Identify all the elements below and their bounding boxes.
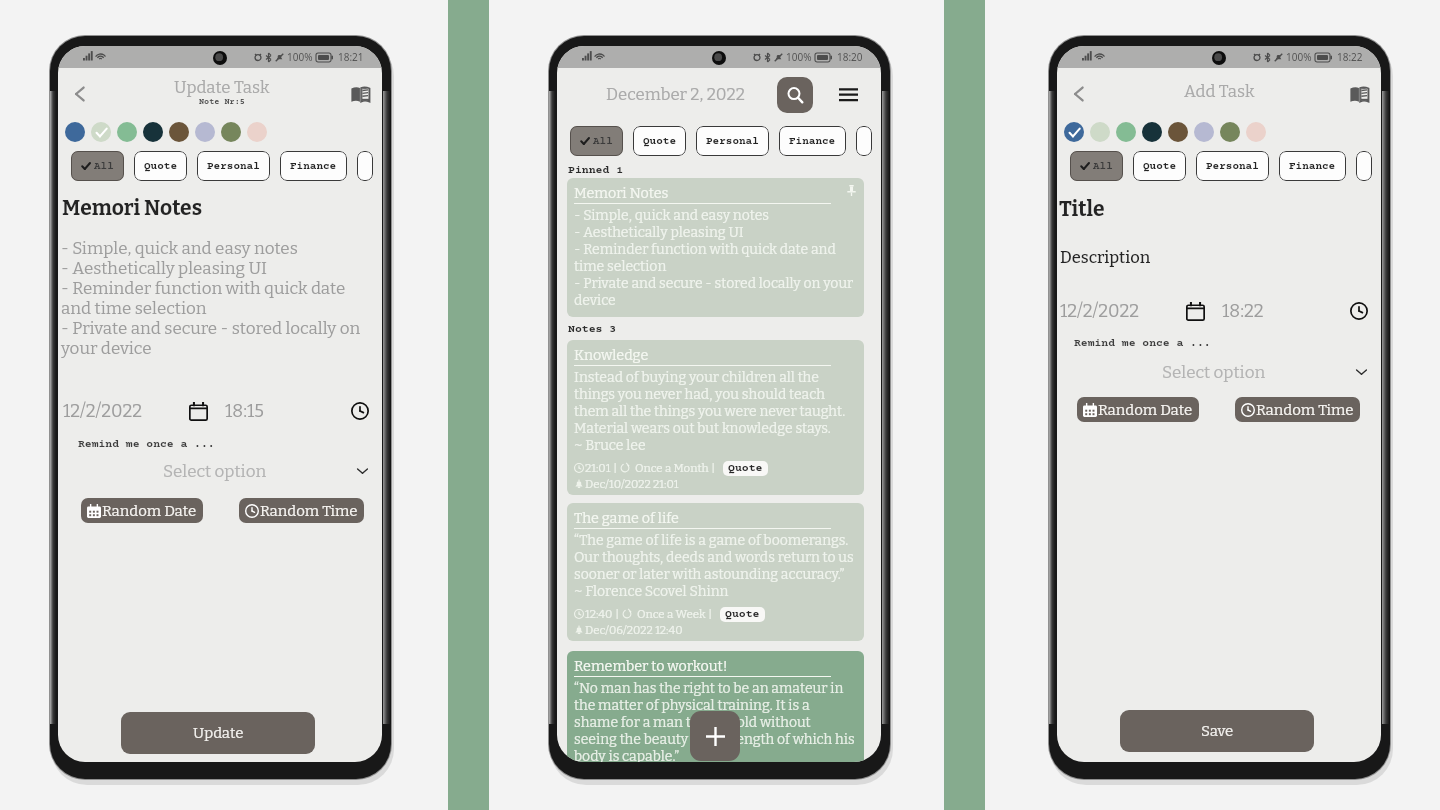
button[interactable]: Finance bbox=[779, 126, 846, 156]
staticText: 12/2/2022 bbox=[63, 400, 143, 422]
staticText: Personal bbox=[207, 160, 260, 172]
button[interactable]: More filters bbox=[856, 126, 872, 156]
button[interactable]: Colour 7 bbox=[1246, 122, 1266, 142]
staticText: Quote bbox=[728, 462, 763, 475]
staticText: Dec/06/2022 12:40 bbox=[585, 623, 683, 637]
button[interactable]: All bbox=[570, 126, 623, 156]
button[interactable]: Random Time bbox=[239, 498, 364, 523]
button[interactable]: Colour 5 bbox=[195, 122, 215, 142]
button[interactable]: Menu bbox=[839, 88, 858, 102]
staticText: Random Date bbox=[102, 502, 197, 520]
staticText: Personal bbox=[1206, 160, 1259, 172]
staticText: “No man has the right to be an amateur i… bbox=[574, 680, 855, 762]
button[interactable]: Back bbox=[1070, 85, 1088, 103]
staticText: 100% bbox=[786, 50, 812, 64]
staticText: 18:22 bbox=[1222, 300, 1264, 322]
staticText: Personal bbox=[706, 135, 759, 147]
button[interactable]: Memori Notes bbox=[567, 178, 864, 317]
staticText: Once a Week bbox=[637, 607, 706, 621]
button[interactable]: Personal bbox=[197, 151, 270, 181]
button[interactable]: Colour 6 bbox=[1220, 122, 1240, 142]
staticText: Remind me once a ... bbox=[78, 438, 215, 451]
staticText: 18:20 bbox=[837, 50, 863, 64]
button[interactable]: All bbox=[1070, 151, 1123, 181]
staticText: | bbox=[706, 607, 713, 621]
staticText: Remember to workout! bbox=[574, 658, 857, 675]
staticText: Dec/10/2022 21:01 bbox=[585, 477, 679, 491]
button[interactable]: Colour 6 bbox=[221, 122, 241, 142]
button[interactable]: More filters bbox=[1356, 151, 1372, 181]
staticText: Quote bbox=[1143, 160, 1176, 172]
staticText: Random Date bbox=[1098, 401, 1193, 419]
staticText: Add Task bbox=[1184, 81, 1255, 101]
staticText: Random Time bbox=[1256, 401, 1354, 419]
staticText: Update bbox=[193, 724, 244, 742]
staticText: Notes 3 bbox=[568, 323, 617, 336]
staticText: | bbox=[613, 607, 622, 621]
staticText: Instead of buying your children all the … bbox=[574, 369, 846, 454]
button[interactable]: Colour 3 bbox=[143, 122, 163, 142]
button[interactable]: Colour 0 bbox=[1064, 122, 1084, 142]
button[interactable]: Colour 7 bbox=[247, 122, 267, 142]
button[interactable]: Add note bbox=[690, 711, 740, 761]
button[interactable]: Colour 4 bbox=[169, 122, 189, 142]
staticText: 18:21 bbox=[338, 50, 364, 64]
button[interactable]: Pick date bbox=[189, 402, 208, 421]
staticText: Knowledge bbox=[574, 347, 857, 364]
button[interactable]: Colour 1 bbox=[1090, 122, 1110, 142]
button[interactable]: Back bbox=[71, 85, 89, 103]
button[interactable]: Knowledge bbox=[567, 340, 864, 495]
staticText: 18:15 bbox=[225, 400, 264, 422]
button[interactable]: Personal bbox=[1196, 151, 1269, 181]
button[interactable]: Select option bbox=[58, 460, 382, 482]
staticText: 12:40 bbox=[585, 607, 613, 621]
button[interactable]: Search bbox=[777, 77, 813, 113]
button[interactable]: The game of life bbox=[567, 503, 864, 641]
staticText: | bbox=[709, 461, 716, 475]
staticText: 21:01 bbox=[585, 461, 611, 475]
button[interactable]: Colour 2 bbox=[1116, 122, 1136, 142]
staticText: Quote bbox=[643, 135, 676, 147]
button[interactable]: Personal bbox=[696, 126, 769, 156]
staticText: All bbox=[593, 135, 613, 147]
button[interactable]: Notes bbox=[1350, 86, 1369, 102]
staticText: Select option bbox=[1162, 362, 1266, 382]
staticText: 18:22 bbox=[1337, 50, 1363, 64]
staticText: December 2, 2022 bbox=[606, 84, 745, 104]
button[interactable]: Finance bbox=[280, 151, 347, 181]
staticText: - Simple, quick and easy notes - Aesthet… bbox=[574, 207, 854, 309]
button[interactable]: Random Time bbox=[1235, 397, 1360, 422]
button[interactable]: Update bbox=[121, 712, 315, 754]
button[interactable]: Colour 3 bbox=[1142, 122, 1162, 142]
button[interactable]: Colour 1 bbox=[91, 122, 111, 142]
staticText: 100% bbox=[287, 50, 313, 64]
staticText: Note Nr:5 bbox=[199, 97, 245, 107]
staticText: Save bbox=[1201, 722, 1234, 740]
staticText: - Simple, quick and easy notes - Aesthet… bbox=[61, 238, 361, 358]
button[interactable]: Colour 0 bbox=[65, 122, 85, 142]
staticText: Update Task bbox=[174, 77, 270, 97]
button[interactable]: Pick time bbox=[351, 402, 369, 420]
button[interactable]: Quote bbox=[134, 151, 187, 181]
button[interactable]: Random Date bbox=[81, 498, 203, 523]
button[interactable]: Quote bbox=[633, 126, 686, 156]
button[interactable]: Pick date bbox=[1186, 302, 1205, 321]
staticText: The game of life bbox=[574, 510, 857, 527]
staticText: “The game of life is a game of boomerang… bbox=[574, 532, 854, 600]
staticText: 100% bbox=[1286, 50, 1312, 64]
staticText: 12/2/2022 bbox=[1060, 300, 1140, 322]
button[interactable]: Quote bbox=[1133, 151, 1186, 181]
button[interactable]: Notes bbox=[351, 86, 370, 102]
button[interactable]: More filters bbox=[357, 151, 373, 181]
button[interactable]: Colour 2 bbox=[117, 122, 137, 142]
button[interactable]: Colour 4 bbox=[1168, 122, 1188, 142]
staticText: Remind me once a ... bbox=[1074, 337, 1211, 350]
button[interactable]: Colour 5 bbox=[1194, 122, 1214, 142]
button[interactable]: Save bbox=[1120, 710, 1314, 752]
button[interactable]: Random Date bbox=[1077, 397, 1199, 422]
button[interactable]: Remember to workout! bbox=[567, 651, 864, 762]
button[interactable]: Pick time bbox=[1350, 302, 1368, 320]
button[interactable]: Select option bbox=[1057, 361, 1381, 383]
button[interactable]: Finance bbox=[1279, 151, 1346, 181]
button[interactable]: All bbox=[71, 151, 124, 181]
